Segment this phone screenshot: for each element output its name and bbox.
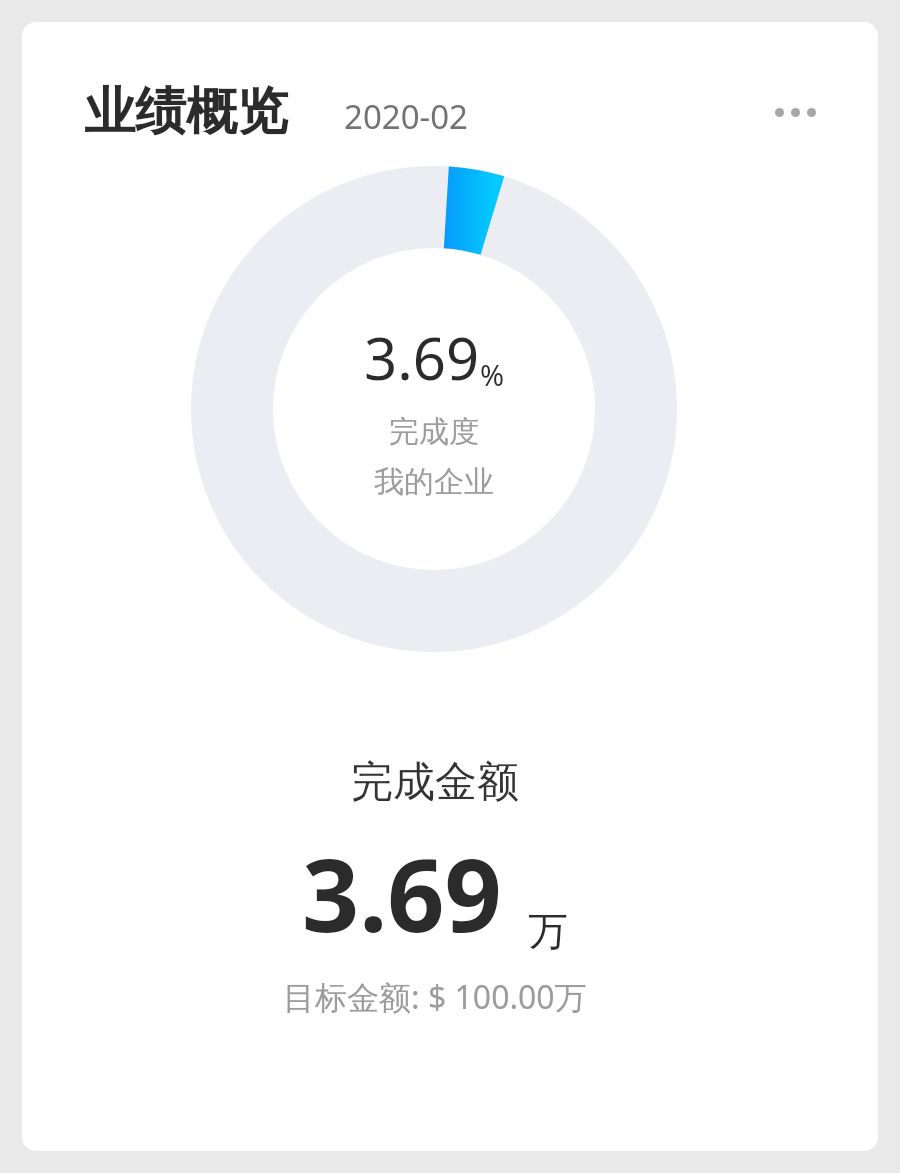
staticText: 3.69 — [364, 318, 480, 397]
staticText: % — [480, 355, 505, 394]
staticText: 2020-02 — [344, 94, 468, 139]
staticText: 完成度 — [389, 413, 479, 451]
button[interactable]: More options — [767, 84, 823, 140]
staticText: 万 — [528, 906, 568, 956]
staticText: 目标金额: $ 100.00万 — [283, 975, 587, 1019]
staticText: 完成金额 — [351, 756, 519, 809]
staticText: 我的企业 — [374, 463, 494, 501]
staticText: 业绩概览 — [84, 80, 288, 144]
staticText: 3.69 — [302, 825, 502, 961]
